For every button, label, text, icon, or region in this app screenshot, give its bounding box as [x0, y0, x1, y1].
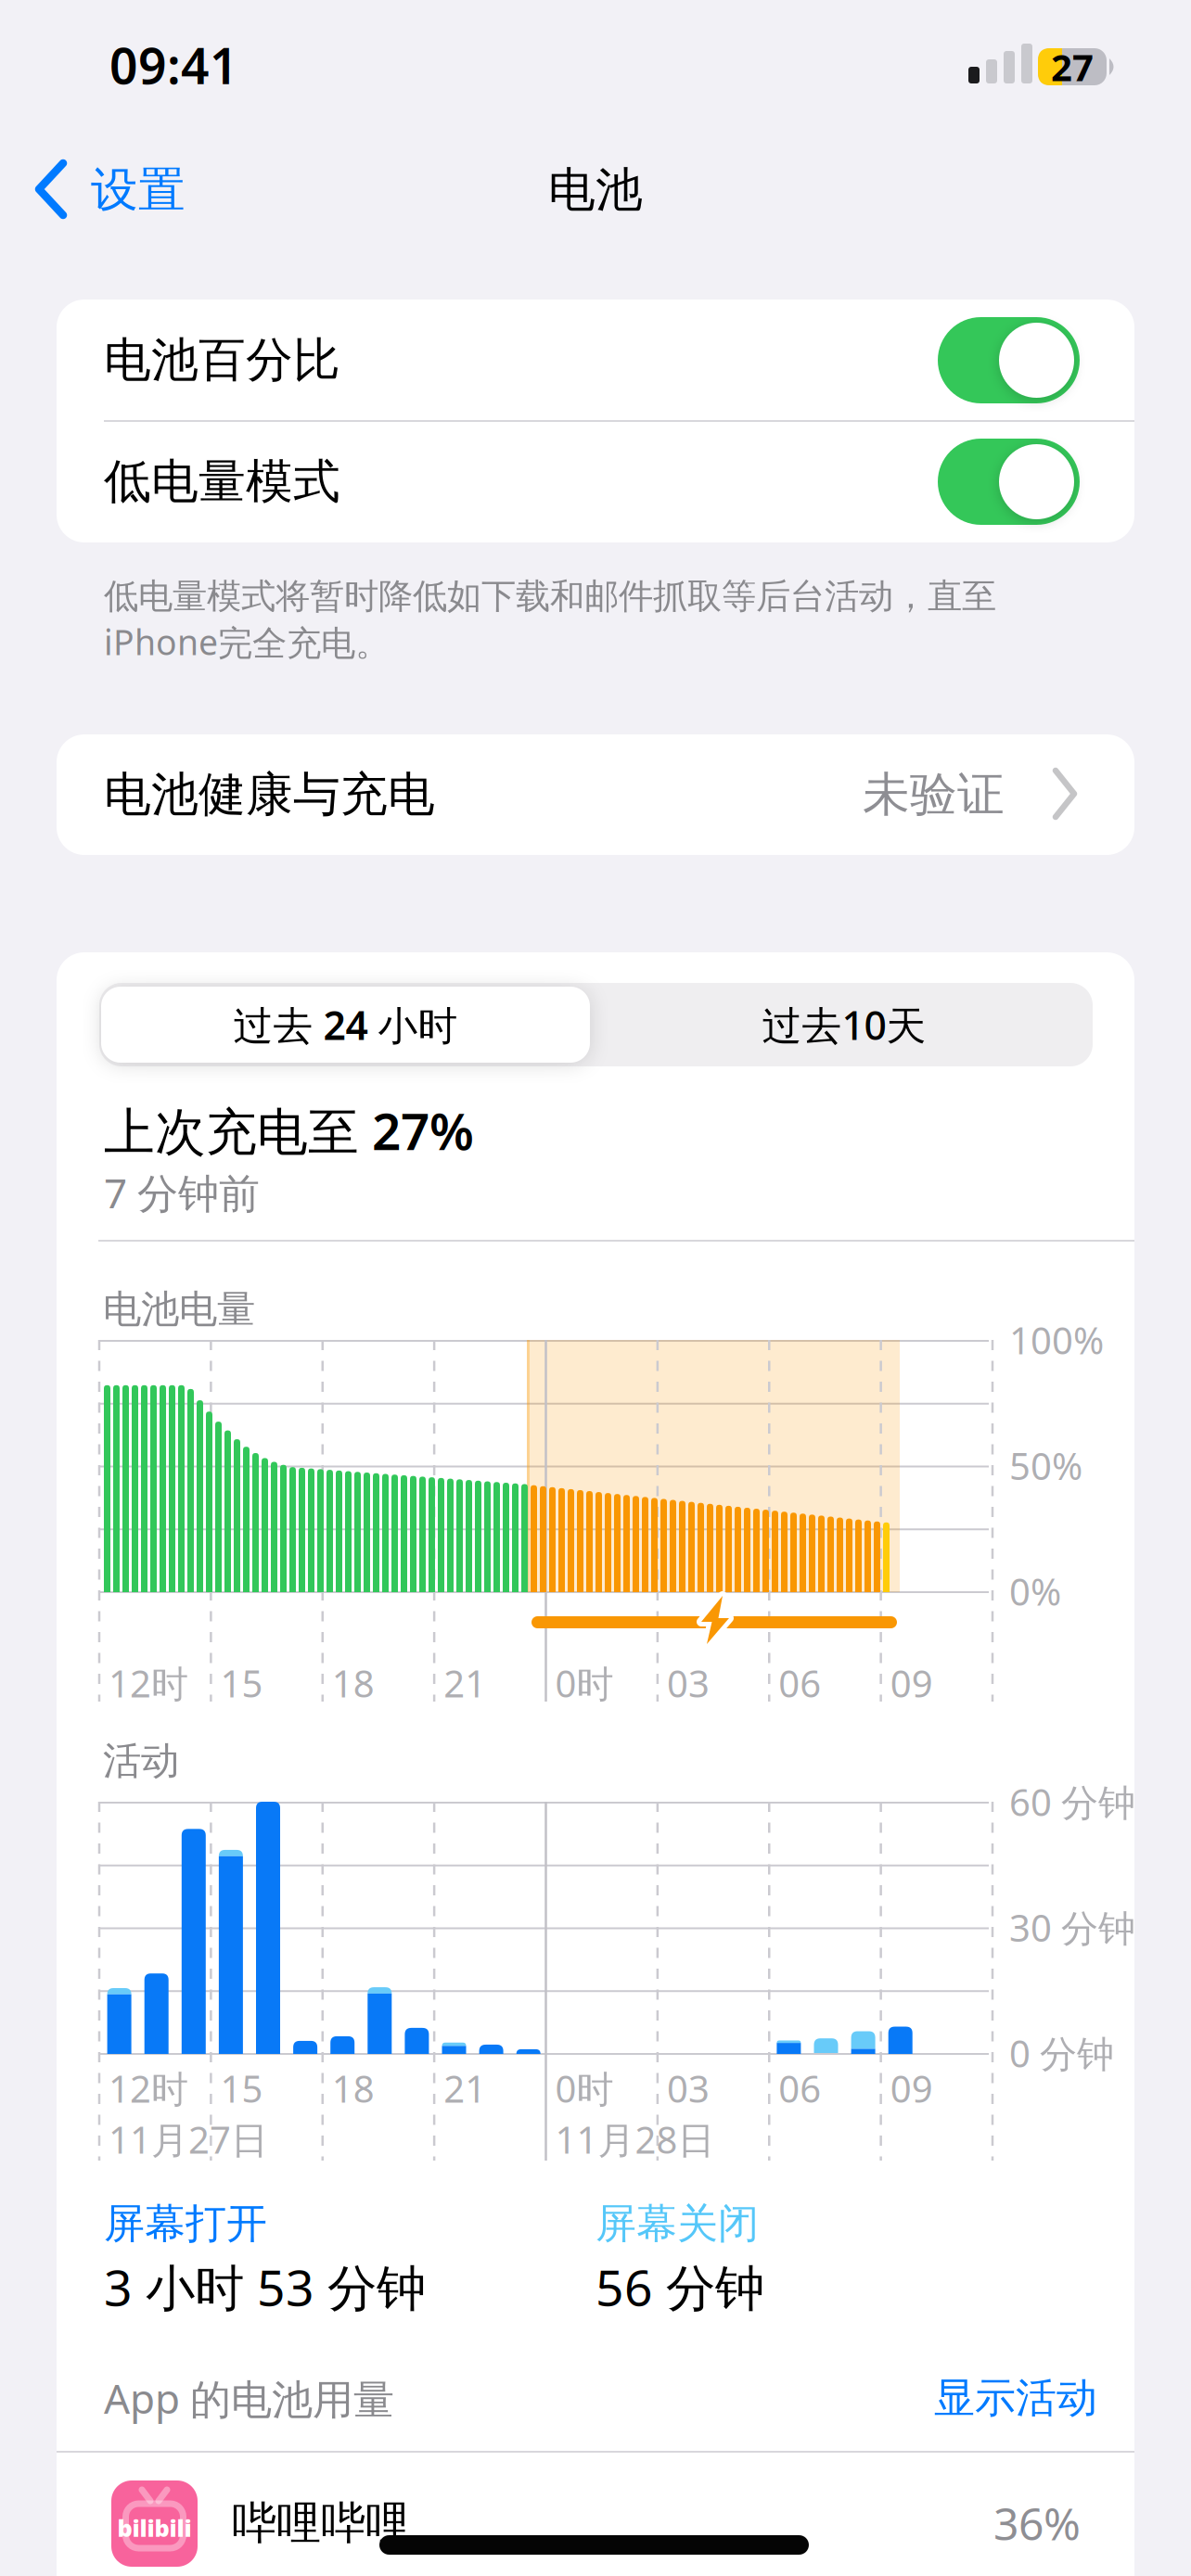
- staticText: 36%: [993, 2494, 1081, 2553]
- staticText: 过去10天: [762, 998, 926, 1051]
- staticText: 18: [332, 1658, 375, 1708]
- button[interactable]: 过去10天: [595, 983, 1093, 1066]
- staticText: 56 分钟: [595, 2254, 764, 2320]
- staticText: 低电量模式: [104, 453, 340, 511]
- staticText: 27: [1051, 42, 1094, 91]
- staticText: 电池: [548, 161, 643, 219]
- staticText: 100%: [1009, 1315, 1104, 1365]
- staticText: 12时: [109, 1658, 188, 1708]
- staticText: App 的电池用量: [104, 2371, 394, 2425]
- button[interactable]: 电池健康与充电: [57, 734, 1134, 855]
- staticText: 电池百分比: [104, 331, 340, 389]
- button[interactable]: bilibili: [57, 2480, 1134, 2576]
- staticText: 未验证: [863, 766, 1005, 824]
- staticText: 0 分钟: [1009, 2028, 1114, 2078]
- button[interactable]: 低电量模式: [57, 421, 1134, 542]
- staticText: 7 分钟前: [104, 1165, 260, 1220]
- button[interactable]: 电池百分比: [57, 300, 1134, 421]
- staticText: 屏幕关闭: [595, 2199, 759, 2249]
- staticText: 12时: [109, 2064, 188, 2113]
- staticText: 30 分钟: [1009, 1903, 1135, 1952]
- staticText: 06: [778, 1658, 821, 1708]
- staticText: 50%: [1009, 1441, 1082, 1490]
- staticText: 11月28日: [555, 2115, 715, 2164]
- staticText: 0时: [555, 1658, 614, 1708]
- staticText: 09:41: [109, 32, 238, 98]
- staticText: 活动: [103, 1737, 179, 1784]
- staticText: 21: [443, 2064, 486, 2113]
- staticText: 21: [443, 1658, 486, 1708]
- staticText: 上次充电至 27%: [104, 1097, 474, 1164]
- staticText: 屏幕打开: [104, 2199, 267, 2249]
- staticText: 过去 24 小时: [233, 998, 458, 1051]
- button[interactable]: 显示活动: [819, 2370, 1097, 2426]
- staticText: 60 分钟: [1009, 1777, 1135, 1826]
- staticText: 显示活动: [934, 2373, 1097, 2423]
- staticText: 11月27日: [109, 2115, 268, 2164]
- staticText: 0%: [1009, 1567, 1061, 1616]
- button[interactable]: 过去 24 小时: [100, 983, 591, 1066]
- button[interactable]: 返回设置: [0, 158, 186, 241]
- staticText: 09: [890, 1658, 933, 1708]
- staticText: 哔哩哔哩: [232, 2496, 410, 2550]
- staticText: bilibili: [117, 2512, 192, 2543]
- staticText: 06: [778, 2064, 821, 2113]
- staticText: 09: [890, 2064, 933, 2113]
- staticText: 电池电量: [103, 1286, 255, 1333]
- staticText: 03: [667, 2064, 709, 2113]
- staticText: 03: [667, 1658, 709, 1708]
- staticText: 15: [220, 1658, 263, 1708]
- staticText: 电池健康与充电: [104, 766, 435, 824]
- staticText: 0时: [555, 2064, 614, 2113]
- staticText: 低电量模式将暂时降低如下载和邮件抓取等后台活动，直至: [104, 575, 996, 618]
- staticText: 18: [332, 2064, 375, 2113]
- staticText: 3 小时 53 分钟: [104, 2254, 426, 2320]
- staticText: 15: [220, 2064, 263, 2113]
- staticText: 设置: [91, 161, 186, 219]
- staticText: iPhone完全充电。: [104, 619, 390, 665]
